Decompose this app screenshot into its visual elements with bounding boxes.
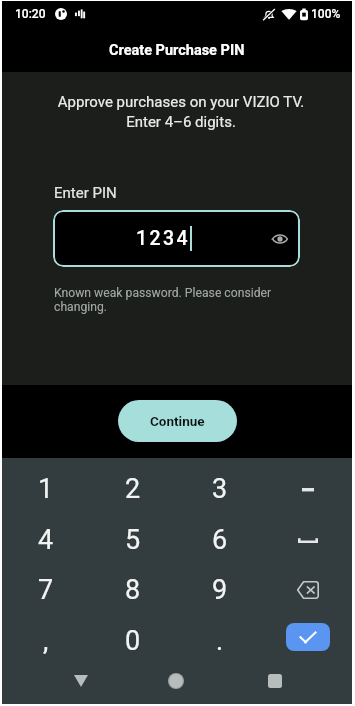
button[interactable]: Space xyxy=(264,515,352,565)
staticText: 3 xyxy=(212,473,228,505)
staticText: Approve purchases on your VIZIO TV. Ente… xyxy=(26,93,336,131)
button[interactable]: Home xyxy=(152,658,200,704)
button[interactable]: 6 xyxy=(176,515,264,565)
button[interactable]: Back xyxy=(57,658,105,704)
button[interactable]: Continue xyxy=(118,400,237,442)
button[interactable]: Backspace xyxy=(264,565,352,615)
button[interactable]: Dash xyxy=(264,464,352,514)
button[interactable]: 2 xyxy=(89,464,176,514)
button[interactable]: 5 xyxy=(89,515,176,565)
staticText: 9 xyxy=(212,574,228,606)
button[interactable]: 4 xyxy=(2,515,89,565)
button[interactable]: 1 xyxy=(2,464,89,514)
staticText: Enter PIN xyxy=(54,184,117,202)
staticText: , xyxy=(43,625,49,657)
button[interactable]: 8 xyxy=(89,565,176,615)
staticText: Continue xyxy=(150,413,205,429)
button[interactable]: Recents xyxy=(251,658,299,704)
staticText: 1 xyxy=(38,473,54,505)
staticText: 4 xyxy=(38,524,54,556)
button[interactable]: Enter xyxy=(264,616,352,666)
staticText: 10:20 xyxy=(15,7,46,21)
button[interactable]: . xyxy=(176,616,264,666)
staticText: 0 xyxy=(125,625,141,657)
staticText: 6 xyxy=(212,524,228,556)
button[interactable]: 3 xyxy=(176,464,264,514)
staticText: 2 xyxy=(125,473,141,505)
button[interactable]: 9 xyxy=(176,565,264,615)
staticText: 8 xyxy=(125,574,141,606)
staticText: 100% xyxy=(311,7,341,21)
button[interactable]: 0 xyxy=(89,616,176,666)
button[interactable]: Show password xyxy=(266,225,294,253)
staticText: . xyxy=(216,625,224,657)
button[interactable]: , xyxy=(2,616,89,666)
staticText: 1234 xyxy=(136,227,190,250)
staticText: 7 xyxy=(38,574,54,606)
staticText: 5 xyxy=(125,524,141,556)
button[interactable]: 7 xyxy=(2,565,89,615)
staticText: Create Purchase PIN xyxy=(109,42,245,59)
staticText: Known weak password. Please consider cha… xyxy=(54,286,276,314)
button[interactable]: 1234 xyxy=(53,210,300,267)
